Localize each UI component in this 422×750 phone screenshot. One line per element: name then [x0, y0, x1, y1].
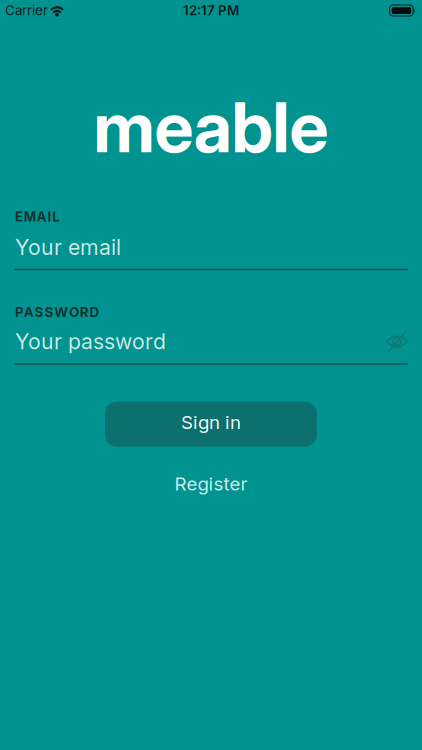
staticText: Your email: [15, 235, 121, 260]
button[interactable]: Your password: [0, 320, 422, 365]
staticText: Carrier: [5, 3, 48, 18]
staticText: Register: [174, 473, 247, 495]
staticText: 12:17 PM: [183, 3, 239, 18]
staticText: EMAIL: [15, 209, 60, 225]
staticText: Your password: [15, 329, 166, 354]
button[interactable]: Show password: [385, 330, 409, 354]
staticText: meable: [93, 85, 328, 169]
button[interactable]: Register: [174, 473, 247, 495]
staticText: PASSWORD: [15, 304, 100, 320]
button[interactable]: Your email: [0, 225, 422, 270]
staticText: Sign in: [181, 411, 241, 433]
button[interactable]: Sign in: [105, 402, 317, 447]
